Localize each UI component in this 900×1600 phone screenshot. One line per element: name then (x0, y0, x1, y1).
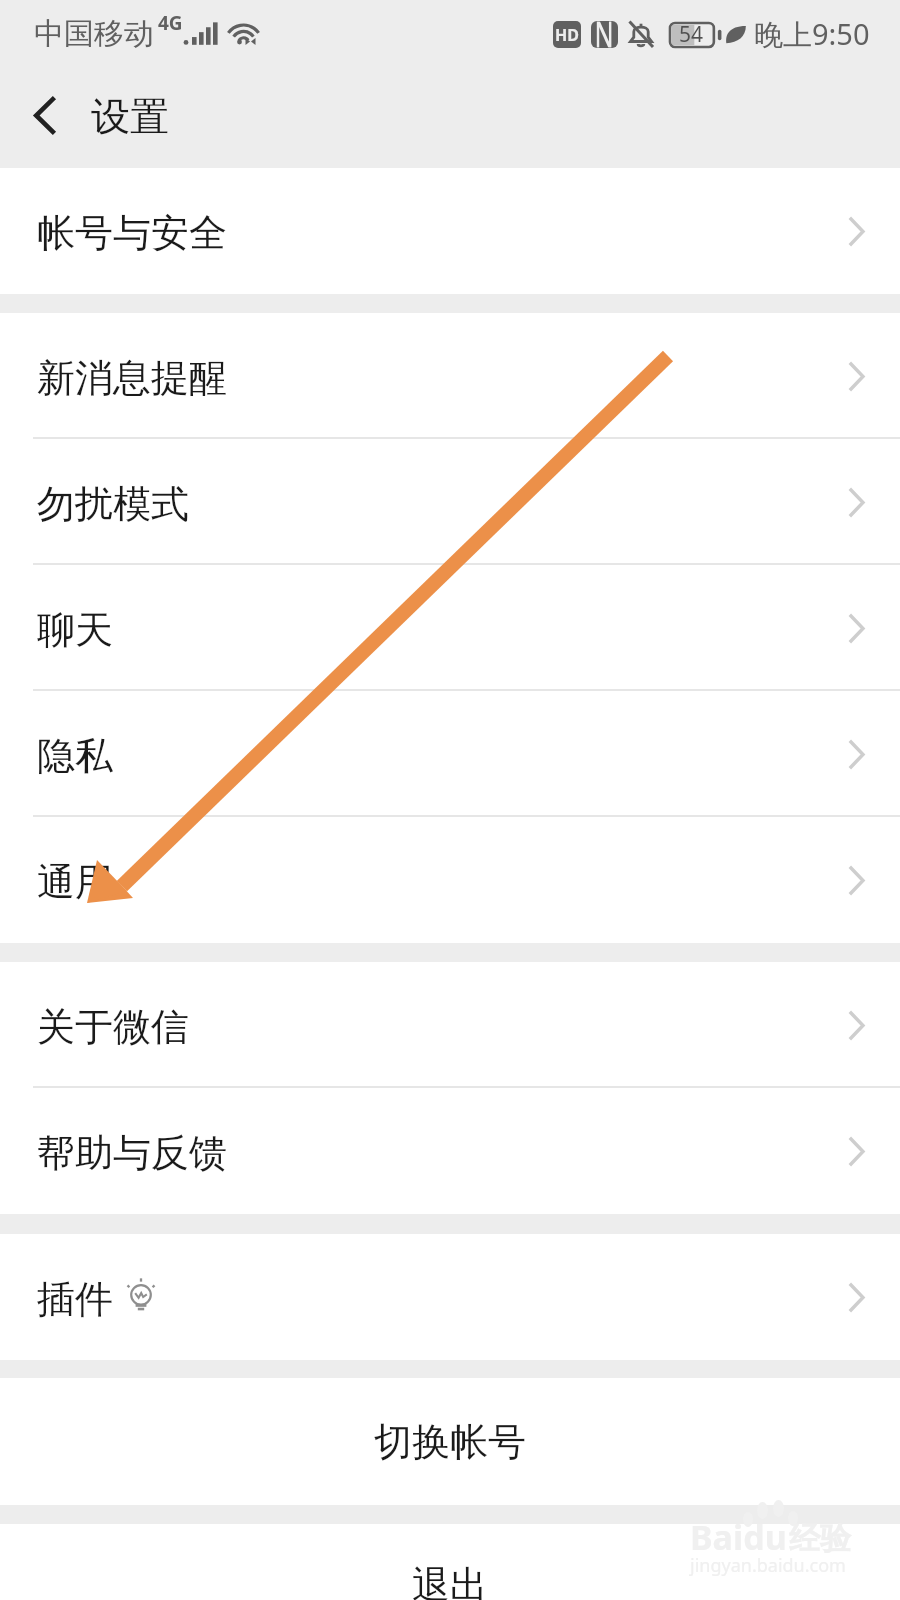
button[interactable]: 返回 (0, 68, 88, 168)
staticText: 退出 (412, 1561, 488, 1600)
staticText: 切换帐号 (374, 1418, 526, 1466)
staticText: 帮助与反馈 (37, 1129, 227, 1177)
staticText: 聊天 (37, 606, 113, 654)
button[interactable]: 隐私 (0, 691, 900, 817)
staticText: 4G (158, 10, 183, 36)
button[interactable]: 关于微信 (0, 962, 900, 1088)
staticText: 通用 (37, 858, 113, 906)
button[interactable]: 新消息提醒 (0, 313, 900, 439)
staticText: 54 (679, 20, 704, 49)
staticText: 新消息提醒 (37, 354, 227, 402)
button[interactable]: 帐号与安全 (0, 168, 900, 294)
button[interactable]: 聊天 (0, 565, 900, 691)
staticText: 设置 (91, 92, 169, 141)
button[interactable]: 插件 (0, 1234, 900, 1360)
staticText: 隐私 (37, 732, 113, 780)
button[interactable]: 切换帐号 (0, 1378, 900, 1505)
button[interactable]: 勿扰模式 (0, 439, 900, 565)
staticText: Baidu (690, 1514, 787, 1560)
staticText: 经验 (789, 1519, 851, 1558)
button[interactable]: 帮助与反馈 (0, 1088, 900, 1214)
button[interactable]: 通用 (0, 817, 900, 943)
staticText: 勿扰模式 (37, 480, 189, 528)
staticText: 帐号与安全 (37, 209, 227, 257)
staticText: 插件 (37, 1275, 113, 1323)
staticText: jingyan.baidu.com (690, 1553, 846, 1578)
staticText: HD (555, 24, 579, 46)
button[interactable]: 退出 (0, 1524, 900, 1600)
staticText: 中国移动 (34, 15, 154, 53)
staticText: 关于微信 (37, 1003, 189, 1051)
staticText: 晚上9:50 (754, 14, 870, 54)
